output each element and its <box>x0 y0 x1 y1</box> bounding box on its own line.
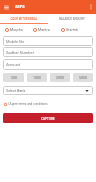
button[interactable]: CASH WITHDRAWAL <box>0 14 48 24</box>
button[interactable]: Menu <box>3 4 10 11</box>
button[interactable]: Startek <box>61 28 89 32</box>
staticText: Startek <box>66 28 78 32</box>
staticText: BALANCE ENQUIRY <box>59 17 85 20</box>
button[interactable]: Mantra <box>33 28 61 32</box>
button[interactable]: 2000 <box>50 73 70 82</box>
staticText: Select Bank <box>6 89 26 93</box>
staticText: Morpho <box>10 28 23 32</box>
staticText: 5000 <box>79 76 87 80</box>
staticText: CASH WITHDRAWAL <box>10 17 38 20</box>
button[interactable]: 5000 <box>73 73 93 82</box>
staticText: Mantra <box>38 28 50 32</box>
button[interactable]: 1000 <box>27 73 47 82</box>
button[interactable]: More options <box>88 4 94 10</box>
button[interactable]: CAPTURE <box>3 113 93 123</box>
button[interactable]: BALANCE ENQUIRY <box>48 14 96 24</box>
button[interactable]: Amount <box>3 59 93 70</box>
button[interactable]: Select Bank <box>3 86 93 95</box>
staticText: Aadhar Number <box>6 50 35 55</box>
staticText: Amount <box>6 62 21 67</box>
staticText: I Agree terms and conditions <box>8 102 48 106</box>
button[interactable]: Mobile No <box>3 36 93 46</box>
button[interactable]: Morpho <box>5 28 33 32</box>
staticText: 1000 <box>33 76 41 80</box>
button[interactable]: 500 <box>3 73 24 82</box>
staticText: AEPS <box>15 5 25 9</box>
staticText: 2000 <box>56 76 64 80</box>
staticText: CAPTURE <box>41 117 55 120</box>
staticText: Mobile No <box>6 39 25 44</box>
staticText: 500 <box>11 76 17 80</box>
button[interactable]: I Agree terms and conditions <box>4 101 48 107</box>
button[interactable]: Aadhar Number <box>3 47 93 57</box>
